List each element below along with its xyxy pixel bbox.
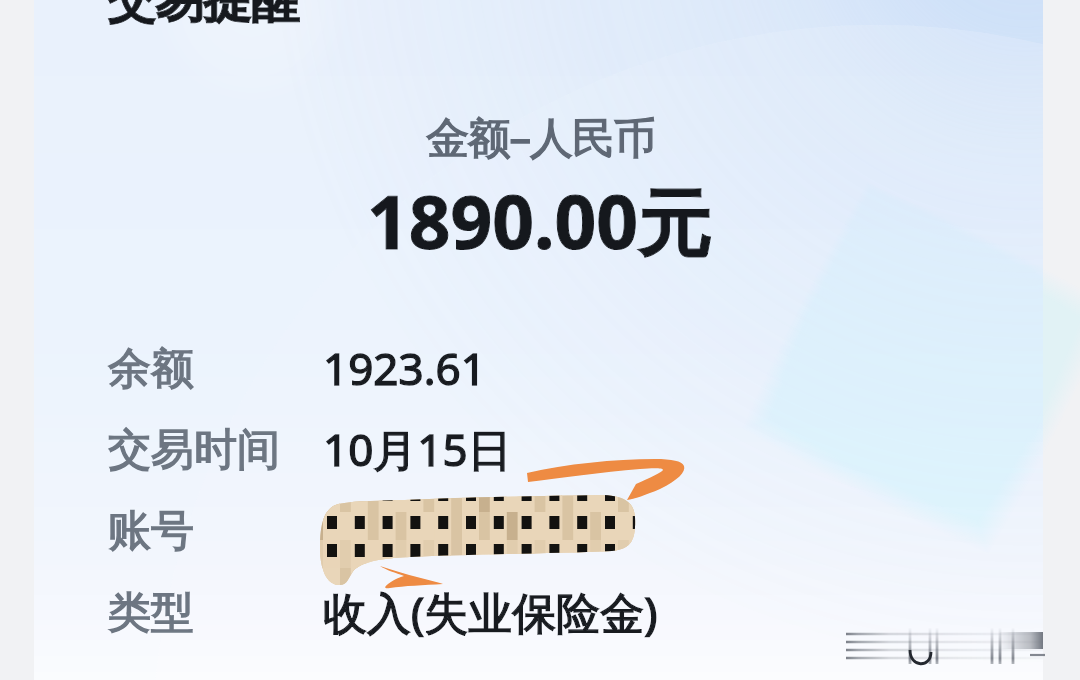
staticText: 金额–人民币 [426,107,656,166]
staticText: 10月15日 [323,419,512,479]
staticText: 收入(失业保险金) [323,582,658,642]
staticText: 交易提醒 [107,0,299,31]
staticText: 账号 [108,504,194,558]
staticText: 62284 [323,500,449,560]
staticText: 账号 [108,504,194,558]
staticText: 10月15日 [323,419,512,479]
staticText: 交易时间 [108,423,280,477]
staticText: 1890.00元 [367,171,712,271]
staticText: 1923.61 [323,338,486,398]
staticText: 1923.61 [323,338,486,398]
staticText: 类型 [108,586,194,640]
staticText: 余额 [108,342,194,396]
staticText: 1890.00元 [367,171,712,271]
staticText: 交易时间 [108,423,280,477]
staticText: 62284 [323,500,449,560]
staticText: 类型 [108,586,194,640]
staticText: 收入(失业保险金) [323,582,658,642]
staticText: 交易提醒 [107,0,299,31]
staticText: 余额 [108,342,194,396]
staticText: 金额–人民币 [426,107,656,166]
